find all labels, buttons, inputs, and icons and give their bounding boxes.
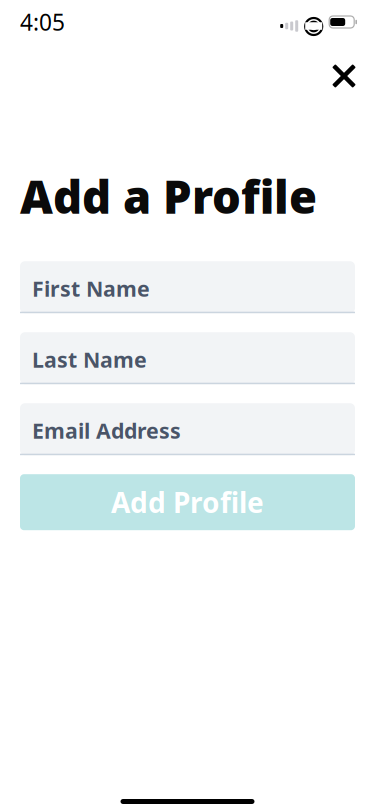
staticText: Email Address: [32, 416, 181, 444]
button[interactable]: Last Name: [20, 332, 355, 384]
staticText: Add a Profile: [20, 166, 317, 226]
staticText: Last Name: [32, 345, 147, 373]
button[interactable]: Email Address: [20, 403, 355, 455]
staticText: First Name: [32, 274, 150, 302]
button[interactable]: First Name: [20, 261, 355, 313]
staticText: Add Profile: [111, 484, 264, 521]
staticText: 4:05: [20, 7, 65, 37]
button[interactable]: Close: [322, 54, 366, 98]
button[interactable]: Add Profile: [20, 474, 355, 530]
